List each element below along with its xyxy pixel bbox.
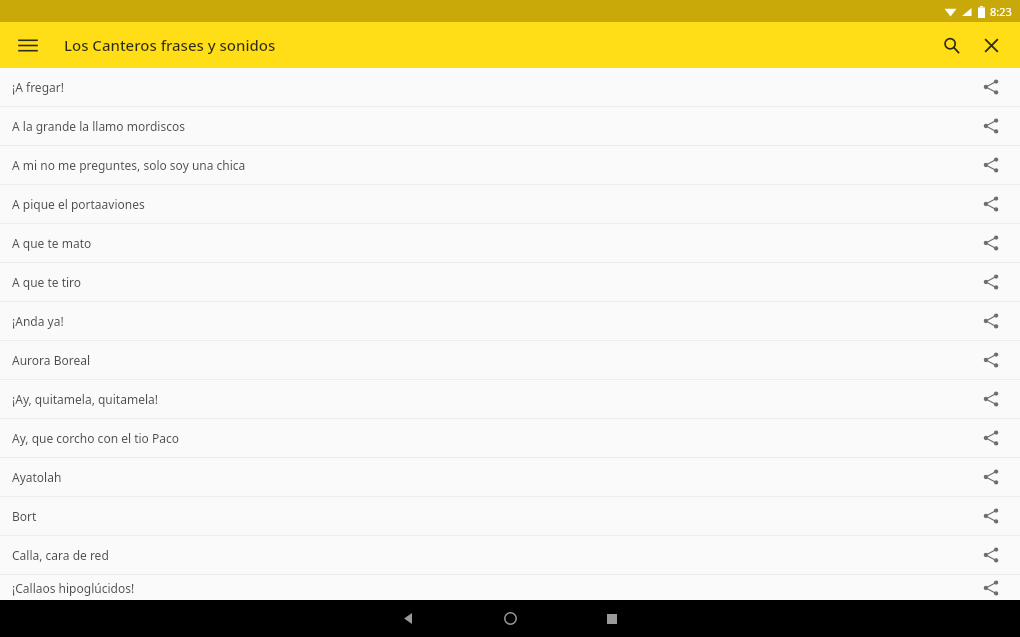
button[interactable]: Calla, cara de red: [0, 536, 1020, 574]
button[interactable]: Share: [974, 304, 1008, 338]
button[interactable]: Ayatolah: [0, 458, 1020, 496]
staticText: A que te mato: [12, 235, 962, 251]
button[interactable]: Open navigation drawer: [12, 29, 44, 61]
button[interactable]: Share: [974, 109, 1008, 143]
staticText: ¡Ay, quitamela, quitamela!: [12, 391, 962, 407]
staticText: Aurora Boreal: [12, 352, 962, 368]
staticText: ¡A fregar!: [12, 79, 962, 95]
staticText: ¡Anda ya!: [12, 313, 962, 329]
staticText: Ayatolah: [12, 469, 962, 485]
button[interactable]: A que te tiro: [0, 263, 1020, 301]
button[interactable]: Share: [974, 382, 1008, 416]
button[interactable]: Share: [974, 70, 1008, 104]
button[interactable]: Share: [974, 343, 1008, 377]
staticText: Calla, cara de red: [12, 547, 962, 563]
button[interactable]: Home: [488, 600, 532, 637]
button[interactable]: A pique el portaaviones: [0, 185, 1020, 223]
button[interactable]: Share: [974, 187, 1008, 221]
button[interactable]: A mi no me preguntes, solo soy una chica: [0, 146, 1020, 184]
button[interactable]: Close: [974, 28, 1008, 62]
button[interactable]: Share: [974, 148, 1008, 182]
button[interactable]: Bort: [0, 497, 1020, 535]
button[interactable]: ¡Ay, quitamela, quitamela!: [0, 380, 1020, 418]
button[interactable]: Back: [386, 600, 430, 637]
staticText: A la grande la llamo mordiscos: [12, 118, 962, 134]
button[interactable]: Share: [974, 499, 1008, 533]
button[interactable]: Recent apps: [590, 600, 634, 637]
staticText: Ay, que corcho con el tio Paco: [12, 430, 962, 446]
staticText: 8:23: [990, 4, 1012, 19]
button[interactable]: Aurora Boreal: [0, 341, 1020, 379]
button[interactable]: Share: [974, 226, 1008, 260]
button[interactable]: ¡Callaos hipoglúcidos!: [0, 575, 1020, 600]
button[interactable]: ¡Anda ya!: [0, 302, 1020, 340]
button[interactable]: Share: [974, 265, 1008, 299]
staticText: Bort: [12, 508, 962, 524]
button[interactable]: Share: [974, 575, 1008, 600]
button[interactable]: Ay, que corcho con el tio Paco: [0, 419, 1020, 457]
button[interactable]: Search: [934, 28, 968, 62]
button[interactable]: Share: [974, 421, 1008, 455]
staticText: A mi no me preguntes, solo soy una chica: [12, 157, 962, 173]
staticText: A pique el portaaviones: [12, 196, 962, 212]
button[interactable]: A que te mato: [0, 224, 1020, 262]
staticText: Los Canteros frases y sonidos: [64, 35, 276, 55]
button[interactable]: ¡A fregar!: [0, 68, 1020, 106]
staticText: A que te tiro: [12, 274, 962, 290]
button[interactable]: Share: [974, 460, 1008, 494]
staticText: ¡Callaos hipoglúcidos!: [12, 580, 962, 596]
button[interactable]: A la grande la llamo mordiscos: [0, 107, 1020, 145]
button[interactable]: Share: [974, 538, 1008, 572]
